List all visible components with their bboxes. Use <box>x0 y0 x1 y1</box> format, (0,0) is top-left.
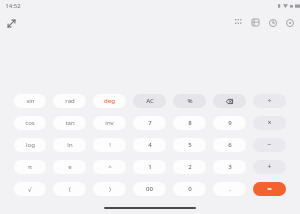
button[interactable]: ÷ <box>253 94 286 108</box>
staticText: − <box>267 140 272 150</box>
button[interactable]: ( <box>53 182 86 196</box>
staticText: ! <box>109 141 111 149</box>
button[interactable]: log <box>14 138 46 152</box>
button[interactable]: 7 <box>133 116 166 130</box>
button[interactable]: e <box>53 160 86 174</box>
staticText: 4 <box>148 141 152 149</box>
button[interactable]: tan <box>53 116 86 130</box>
button[interactable]: Keypad mode <box>232 16 245 29</box>
staticText: ÷ <box>267 96 272 106</box>
staticText: tan <box>65 119 75 127</box>
staticText: sin <box>26 97 35 105</box>
button[interactable]: π <box>14 160 46 174</box>
staticText: + <box>267 162 272 172</box>
staticText: ln <box>67 141 73 149</box>
staticText: 8 <box>188 119 192 127</box>
staticText: = <box>267 184 272 194</box>
staticText: log <box>26 141 35 149</box>
staticText: 00 <box>146 185 153 193</box>
button[interactable]: 00 <box>133 182 166 196</box>
button[interactable]: Expand <box>3 15 19 31</box>
button[interactable]: rad <box>53 94 86 108</box>
button[interactable]: 5 <box>173 138 206 152</box>
button[interactable]: cos <box>14 116 46 130</box>
staticText: 9 <box>228 119 232 127</box>
staticText: √ <box>28 186 32 193</box>
button[interactable]: ) <box>93 182 126 196</box>
button[interactable]: ln <box>53 138 86 152</box>
button[interactable]: 0 <box>173 182 206 196</box>
button[interactable]: = <box>253 182 286 196</box>
staticText: 14:52 <box>5 2 21 10</box>
staticText: 0 <box>188 185 192 193</box>
staticText: AC <box>146 97 154 105</box>
staticText: e <box>68 163 72 171</box>
button[interactable]: . <box>213 182 246 196</box>
button[interactable]: 1 <box>133 160 166 174</box>
button[interactable]: Backspace <box>213 94 246 108</box>
button[interactable]: 8 <box>173 116 206 130</box>
button[interactable]: Settings <box>283 16 296 29</box>
staticText: 2 <box>188 163 192 171</box>
button[interactable]: inv <box>93 116 126 130</box>
button[interactable]: 6 <box>213 138 246 152</box>
staticText: cos <box>25 119 35 127</box>
staticText: 7 <box>148 119 152 127</box>
staticText: × <box>267 118 272 128</box>
staticText: ( <box>69 185 71 193</box>
staticText: ) <box>109 185 111 193</box>
button[interactable]: ! <box>93 138 126 152</box>
staticText: inv <box>105 119 114 127</box>
staticText: . <box>229 185 231 193</box>
button[interactable]: Calculator mode <box>249 16 262 29</box>
staticText: 5 <box>188 141 192 149</box>
staticText: 3 <box>228 163 232 171</box>
button[interactable]: 4 <box>133 138 166 152</box>
button[interactable]: % <box>173 94 206 108</box>
button[interactable]: sin <box>14 94 46 108</box>
button[interactable]: History <box>266 16 279 29</box>
button[interactable]: 9 <box>213 116 246 130</box>
button[interactable]: − <box>253 138 286 152</box>
button[interactable]: × <box>253 116 286 130</box>
staticText: 1 <box>148 163 152 171</box>
button[interactable]: 2 <box>173 160 206 174</box>
staticText: π <box>28 163 32 171</box>
button[interactable]: deg <box>93 94 126 108</box>
button[interactable]: 3 <box>213 160 246 174</box>
staticText: rad <box>65 97 75 105</box>
staticText: ^ <box>108 163 112 171</box>
button[interactable]: + <box>253 160 286 174</box>
button[interactable]: ^ <box>93 160 126 174</box>
button[interactable]: AC <box>133 94 166 108</box>
staticText: 6 <box>228 141 232 149</box>
button[interactable]: √ <box>14 182 46 196</box>
staticText: deg <box>104 97 115 105</box>
staticText: % <box>187 97 193 105</box>
